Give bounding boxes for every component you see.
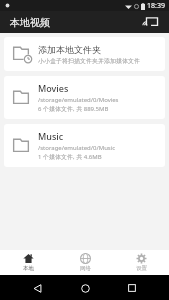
staticText: 6 个媒体文件, 共 889.5MB bbox=[38, 105, 109, 113]
staticText: /storage/emulated/0/Music bbox=[38, 144, 116, 152]
button[interactable]: 本地 bbox=[0, 250, 57, 275]
button[interactable]: Back bbox=[26, 277, 48, 299]
button[interactable]: Music bbox=[4, 124, 165, 167]
button[interactable]: 设置 bbox=[113, 250, 169, 275]
button[interactable]: 添加本地文件夹 bbox=[4, 37, 165, 71]
button[interactable]: 网络 bbox=[57, 250, 113, 275]
button[interactable]: 投屏 bbox=[143, 13, 161, 31]
staticText: 设置 bbox=[136, 265, 147, 272]
staticText: /storage/emulated/0/Movies bbox=[38, 96, 119, 104]
staticText: 添加本地文件夹 bbox=[38, 44, 101, 55]
staticText: 小小盒子将扫描文件夹并添加媒体文件 bbox=[38, 57, 140, 65]
staticText: 1 个媒体文件, 共 4.6MB bbox=[38, 153, 102, 161]
staticText: 本地 bbox=[23, 265, 34, 272]
button[interactable]: Home bbox=[74, 277, 96, 299]
button[interactable]: Recents bbox=[121, 277, 143, 299]
button[interactable]: Movies bbox=[4, 76, 165, 119]
staticText: Music bbox=[38, 130, 64, 142]
staticText: 18:39 bbox=[147, 1, 165, 11]
staticText: 本地视频 bbox=[10, 16, 50, 29]
staticText: Movies bbox=[38, 82, 69, 94]
staticText: 网络 bbox=[80, 265, 91, 272]
